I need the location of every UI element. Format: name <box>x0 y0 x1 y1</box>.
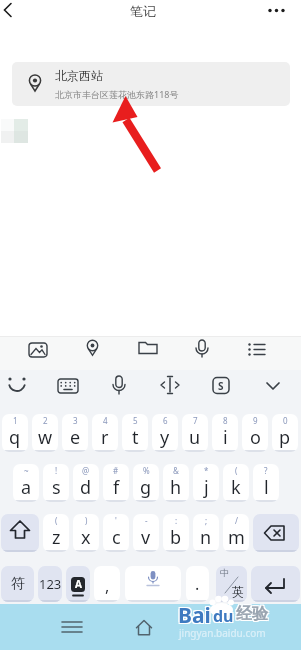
button[interactable]: ( <box>43 514 69 552</box>
button[interactable]: 中 <box>216 566 247 602</box>
staticText: Bai <box>178 601 211 630</box>
button[interactable]: 3 <box>62 414 88 452</box>
button[interactable] <box>262 0 294 24</box>
button[interactable]: S <box>206 371 236 401</box>
button[interactable]: 7 <box>182 414 208 452</box>
button[interactable] <box>104 371 134 401</box>
button[interactable]: 1 <box>2 414 28 452</box>
staticText: 5 <box>133 415 138 426</box>
button[interactable]: ' <box>103 514 129 552</box>
button[interactable] <box>237 333 277 367</box>
staticText: - <box>145 515 148 526</box>
staticText: 经验 <box>236 604 268 624</box>
button[interactable]: % <box>133 464 159 502</box>
staticText: i <box>223 425 228 450</box>
staticText: j <box>204 475 209 500</box>
button[interactable]: ~ <box>13 464 39 502</box>
button[interactable]: 6 <box>152 414 178 452</box>
staticText: d <box>80 475 92 500</box>
button[interactable] <box>53 371 83 401</box>
button[interactable]: : <box>163 514 189 552</box>
button[interactable]: / <box>223 514 249 552</box>
button[interactable] <box>253 514 299 552</box>
staticText: x <box>81 525 91 550</box>
staticText: 0 <box>283 415 288 426</box>
button[interactable]: # <box>103 464 129 502</box>
staticText: du <box>213 605 234 627</box>
staticText: ? <box>264 465 268 476</box>
staticText: m <box>228 525 245 550</box>
staticText: 经验 <box>237 605 269 625</box>
staticText: du <box>212 606 233 628</box>
staticText: t <box>132 425 139 450</box>
staticText: s <box>52 475 61 500</box>
button[interactable] <box>128 333 168 367</box>
staticText: jingyan.baidu.com <box>179 626 266 640</box>
button[interactable]: ? <box>253 464 279 502</box>
button[interactable] <box>2 371 32 401</box>
button[interactable]: 北京西站 <box>12 62 290 106</box>
button[interactable]: 符 <box>1 566 34 602</box>
staticText: 123 <box>39 575 62 593</box>
staticText: n <box>200 525 212 550</box>
staticText: Bai <box>177 602 210 631</box>
button[interactable]: , <box>94 566 120 602</box>
staticText: 经验 <box>235 605 267 625</box>
button[interactable] <box>182 333 222 367</box>
button[interactable] <box>0 0 28 26</box>
staticText: du <box>214 604 235 626</box>
button[interactable]: 2 <box>32 414 58 452</box>
button[interactable]: ( <box>223 464 249 502</box>
staticText: q <box>9 425 21 450</box>
staticText: h <box>170 475 182 500</box>
button[interactable]: ! <box>43 464 69 502</box>
button[interactable] <box>124 610 164 642</box>
staticText: 笔记 <box>130 3 156 19</box>
button[interactable]: 123 <box>38 566 62 602</box>
button[interactable]: . <box>186 566 209 602</box>
button[interactable]: 8 <box>212 414 238 452</box>
button[interactable] <box>251 566 300 602</box>
button[interactable]: * <box>193 464 219 502</box>
staticText: f <box>113 475 120 500</box>
button[interactable] <box>52 612 92 644</box>
staticText: : <box>175 515 178 526</box>
staticText: ) <box>85 515 88 526</box>
button[interactable] <box>18 333 58 367</box>
button[interactable]: ; <box>193 514 219 552</box>
staticText: S <box>218 379 224 393</box>
button[interactable]: 4 <box>92 414 118 452</box>
button[interactable]: A <box>66 566 90 602</box>
staticText: * <box>204 465 209 476</box>
staticText: @ <box>82 465 90 476</box>
staticText: 中 <box>220 567 229 578</box>
staticText: 2 <box>43 415 48 426</box>
button[interactable]: @ <box>73 464 99 502</box>
staticText: A <box>75 577 82 591</box>
staticText: ( <box>235 465 238 476</box>
staticText: k <box>231 475 241 500</box>
button[interactable]: 5 <box>122 414 148 452</box>
button[interactable] <box>1 514 39 552</box>
staticText: 3 <box>73 415 78 426</box>
button[interactable]: & <box>163 464 189 502</box>
button[interactable] <box>125 566 181 602</box>
button[interactable]: 0 <box>272 414 298 452</box>
staticText: 6 <box>163 415 168 426</box>
staticText: 北京市丰台区莲花池东路118号 <box>55 88 179 100</box>
staticText: ' <box>115 515 117 526</box>
button[interactable]: - <box>133 514 159 552</box>
button[interactable] <box>258 371 288 401</box>
staticText: ! <box>55 465 58 476</box>
staticText: . <box>195 573 200 595</box>
staticText: / <box>235 515 238 526</box>
staticText: u <box>189 425 201 450</box>
button[interactable]: 9 <box>242 414 268 452</box>
staticText: du <box>214 606 235 628</box>
staticText: 9 <box>253 415 258 426</box>
button[interactable] <box>72 333 112 367</box>
staticText: o <box>250 425 261 450</box>
button[interactable] <box>155 371 185 401</box>
button[interactable]: ) <box>73 514 99 552</box>
staticText: p <box>279 425 291 450</box>
